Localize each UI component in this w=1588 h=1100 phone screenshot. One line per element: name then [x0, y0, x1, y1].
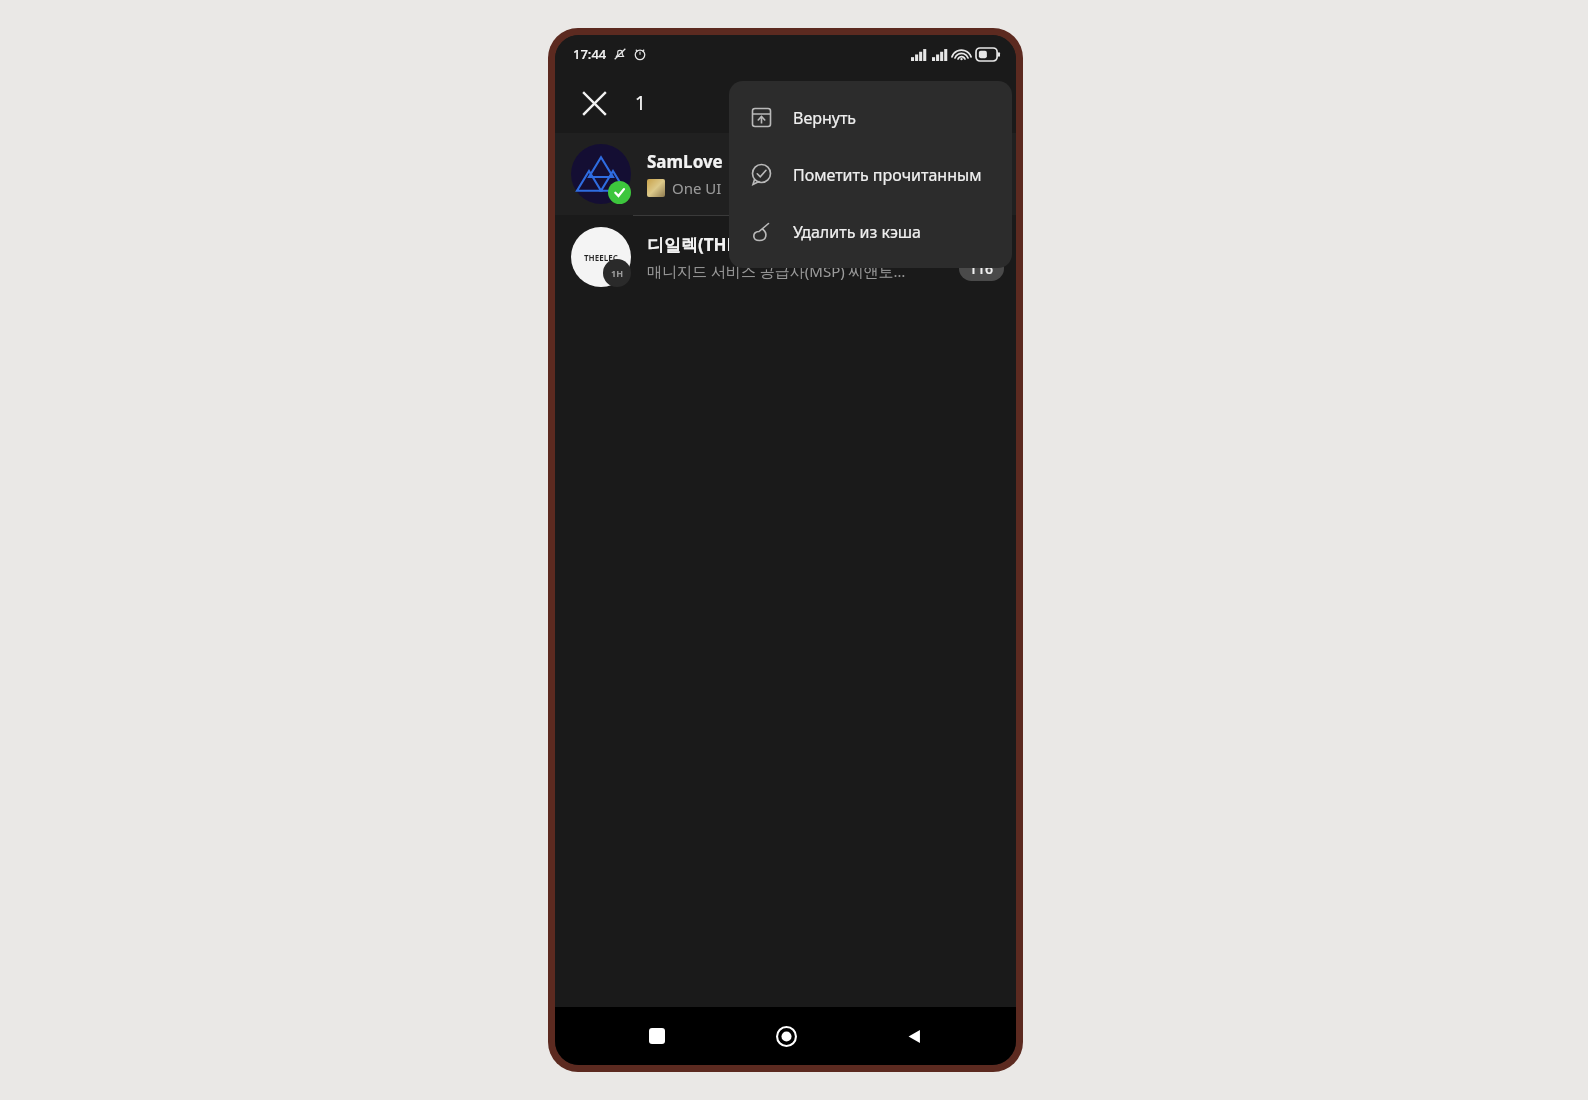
button[interactable]: Вернуть: [729, 89, 1012, 146]
button[interactable]: Close selection: [571, 80, 617, 126]
button[interactable]: Удалить из кэша: [729, 203, 1012, 260]
staticText: 116: [969, 259, 994, 278]
staticText: THEELEC: [584, 252, 618, 263]
button[interactable]: Home: [760, 1010, 812, 1062]
button[interactable]: SamLove: [555, 133, 1016, 215]
staticText: Вернуть: [793, 107, 857, 129]
button[interactable]: THEELEC: [555, 216, 1016, 298]
staticText: 1H: [611, 267, 624, 279]
button[interactable]: Recent apps: [631, 1010, 683, 1062]
staticText: 매니지드 서비스 공급사(MSP) 씨앤토…: [647, 261, 906, 281]
staticText: SamLove: [647, 150, 723, 173]
button[interactable]: Back: [888, 1010, 940, 1062]
staticText: 디일렉(THEELEC): [647, 233, 782, 256]
staticText: Пометить прочитанным: [793, 164, 982, 186]
staticText: 1: [635, 90, 646, 116]
staticText: One UI: [672, 178, 722, 198]
staticText: 17:44: [573, 45, 607, 63]
staticText: Удалить из кэша: [793, 221, 922, 243]
button[interactable]: Пометить прочитанным: [729, 146, 1012, 203]
